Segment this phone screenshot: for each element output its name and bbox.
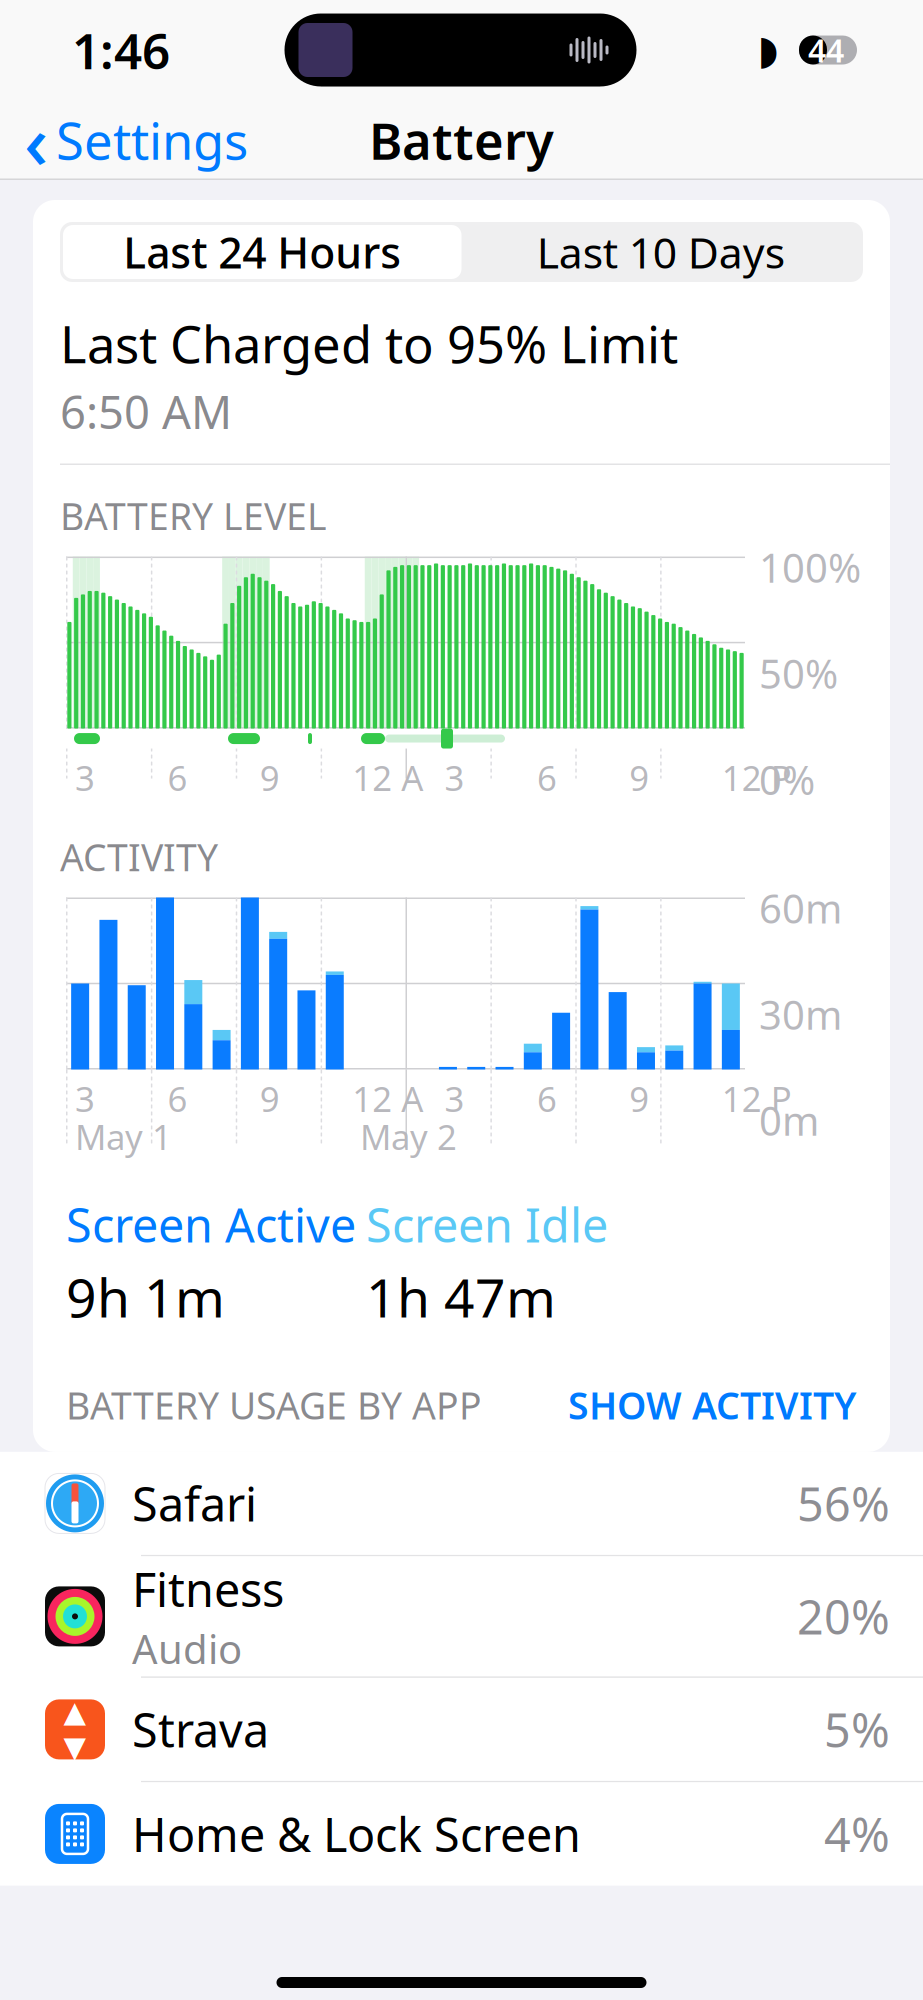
staticText: 3 [75, 1075, 95, 1121]
staticText: 44 [808, 29, 844, 71]
staticText: ‹ [24, 90, 48, 190]
staticText: 6 [537, 755, 557, 801]
staticText: BATTERY LEVEL [60, 491, 327, 541]
staticText: Fitness [132, 1558, 284, 1620]
staticText: Audio [132, 1622, 242, 1675]
staticText: 12 A [352, 755, 423, 801]
staticText: Screen Active [66, 1193, 356, 1255]
staticText: 9 [629, 1075, 649, 1121]
staticText: BATTERY USAGE BY APP [66, 1380, 482, 1430]
staticText: 0% [759, 753, 815, 806]
staticText: Last Charged to 95% Limit [60, 310, 678, 377]
staticText: Safari [132, 1472, 257, 1534]
staticText: Screen Idle [366, 1193, 608, 1255]
staticText: 60m [759, 881, 842, 935]
staticText: May 2 [360, 1113, 457, 1159]
staticText: 50% [759, 647, 838, 700]
staticText: Strava [132, 1698, 269, 1760]
staticText: 0m [759, 1094, 819, 1147]
button[interactable]: ▲ [0, 1678, 923, 1782]
staticText: 4% [824, 1803, 890, 1865]
staticText: 3 [75, 755, 95, 801]
staticText: Last 10 Days [537, 224, 785, 280]
staticText: ▲ [63, 1695, 86, 1728]
staticText: 56% [797, 1472, 890, 1534]
staticText: Last 24 Hours [123, 224, 401, 280]
staticText: 1h 47m [366, 1261, 556, 1332]
staticText: 9 [260, 1075, 280, 1121]
button[interactable]: Safari [0, 1452, 923, 1556]
staticText: 30m [759, 988, 842, 1041]
staticText: 6:50 AM [60, 381, 232, 441]
button[interactable]: SHOW ACTIVITY [568, 1380, 857, 1430]
staticText: Battery [369, 106, 554, 174]
staticText: 12 P [722, 1075, 792, 1121]
staticText: 5% [824, 1698, 890, 1760]
button[interactable]: Home & Lock Screen [0, 1782, 923, 1885]
button[interactable]: Fitness [0, 1556, 923, 1678]
staticText: 6 [167, 755, 187, 801]
staticText: Home & Lock Screen [132, 1803, 581, 1865]
staticText: 20% [797, 1585, 890, 1647]
staticText: SHOW ACTIVITY [568, 1380, 857, 1430]
staticText: Settings [56, 106, 248, 174]
button[interactable]: Last 24 Hours [63, 225, 461, 279]
staticText: ▼ [63, 1730, 86, 1764]
staticText: 9h 1m [66, 1261, 225, 1332]
staticText: 1:46 [72, 17, 170, 83]
staticText: 12 A [352, 1075, 423, 1121]
staticText: 6 [537, 1075, 557, 1121]
staticText: ACTIVITY [60, 832, 218, 881]
staticText: 100% [759, 541, 861, 594]
staticText: 9 [260, 755, 280, 801]
staticText: 3 [444, 755, 464, 801]
staticText: ◗ [757, 27, 778, 73]
button[interactable]: Last 10 Days [461, 225, 860, 279]
staticText: May 1 [75, 1113, 172, 1159]
staticText: 6 [167, 1075, 187, 1121]
staticText: 12 P [722, 755, 792, 801]
button[interactable]: ‹ [0, 100, 260, 180]
staticText: 9 [629, 755, 649, 801]
staticText: 3 [444, 1075, 464, 1121]
